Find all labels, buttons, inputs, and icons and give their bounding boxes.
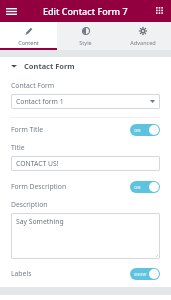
button[interactable]: Contact form 1 <box>11 94 160 109</box>
staticText: Say Something <box>16 217 64 226</box>
staticText: Advanced <box>130 39 156 46</box>
staticText: Labels <box>11 269 130 278</box>
staticText: ON <box>134 128 141 133</box>
staticText: Contact Form <box>11 81 55 90</box>
staticText: Form Title <box>11 125 130 134</box>
button[interactable]: Form Description <box>11 179 160 194</box>
staticText: Style <box>79 39 92 46</box>
button[interactable]: CONTACT US! <box>11 156 160 171</box>
staticText: Form Description <box>11 182 130 191</box>
button[interactable]: Advanced <box>114 22 171 50</box>
staticText: CONTACT US! <box>16 159 59 168</box>
other: Collapse section <box>11 64 17 68</box>
button[interactable]: Menu <box>0 0 22 22</box>
staticText: Description <box>11 200 48 209</box>
button[interactable]: Style <box>57 22 114 50</box>
staticText: Title <box>11 143 25 152</box>
button[interactable]: Collapse section <box>0 57 171 74</box>
staticText: SHOW <box>134 272 147 277</box>
staticText: Edit Contact Form 7 <box>43 5 128 17</box>
button[interactable]: Say Something <box>11 213 160 259</box>
button[interactable]: Labels <box>11 266 160 281</box>
staticText: Contact Form <box>24 61 75 71</box>
staticText: Contact form 1 <box>16 97 150 106</box>
button[interactable]: Content <box>0 22 57 50</box>
staticText: Content <box>18 39 39 46</box>
button[interactable]: Apps <box>149 0 171 22</box>
staticText: ON <box>134 185 141 190</box>
button[interactable]: Form Title <box>11 122 160 137</box>
